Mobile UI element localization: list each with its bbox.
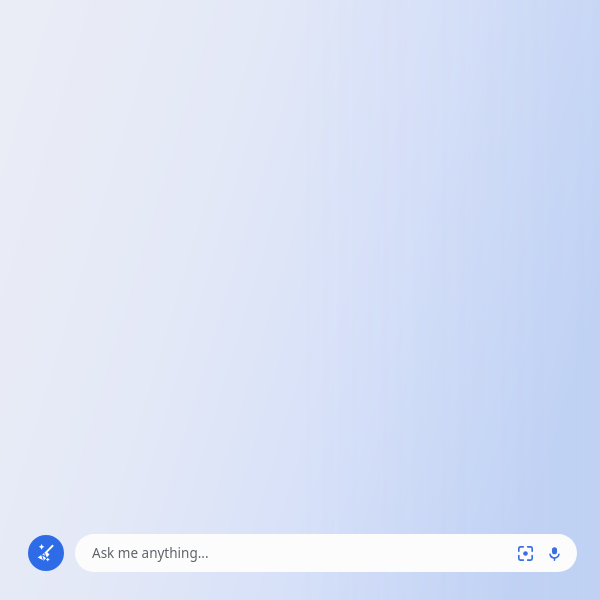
staticText: Ask me anything... bbox=[92, 544, 209, 562]
button[interactable]: Voice search bbox=[542, 541, 566, 565]
button[interactable]: Clean bbox=[28, 535, 64, 571]
button[interactable]: Ask me anything... bbox=[75, 534, 577, 572]
button[interactable]: Search with camera bbox=[513, 541, 537, 565]
